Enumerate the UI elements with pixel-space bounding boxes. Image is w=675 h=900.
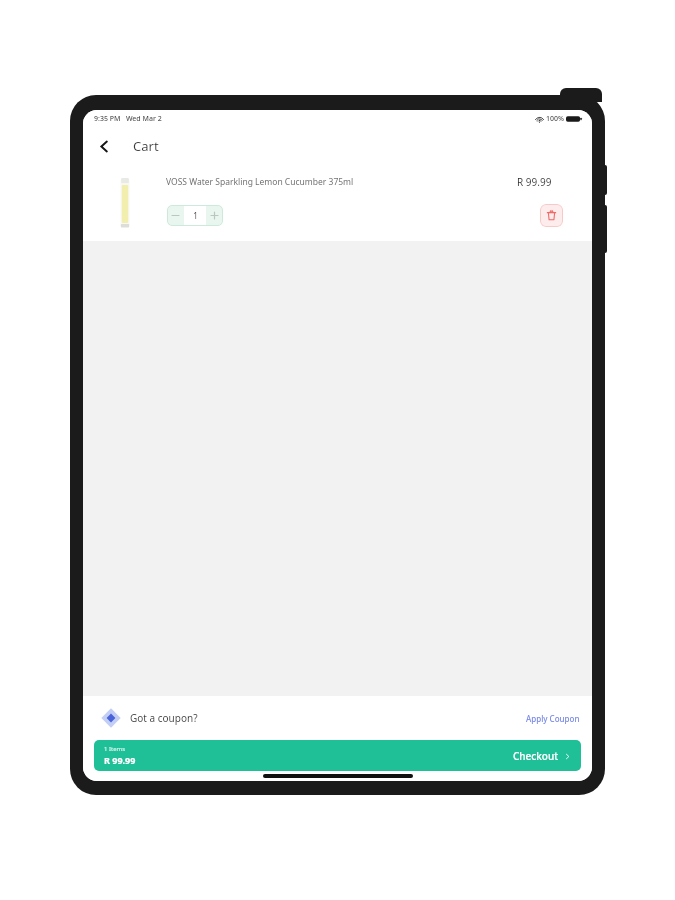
staticText: R 99.99 (104, 754, 136, 766)
staticText: Cart (133, 137, 159, 155)
button[interactable]: Apply Coupon (522, 709, 584, 728)
button[interactable]: Increase quantity (206, 205, 223, 226)
staticText: Checkout (513, 749, 559, 763)
button[interactable]: Delete item (540, 204, 563, 227)
button[interactable]: Back (89, 131, 119, 161)
staticText: 1 Items (104, 745, 126, 753)
button[interactable]: Decrease quantity (167, 205, 184, 226)
staticText: 9:35 PM Wed Mar 2 (94, 114, 162, 124)
button[interactable]: 1 Items (94, 740, 581, 771)
button[interactable]: Got a coupon? (83, 696, 592, 740)
staticText: 100% (546, 114, 564, 124)
staticText: Got a coupon? (130, 711, 198, 725)
staticText: R 99.99 (517, 175, 552, 189)
staticText: 1 (193, 210, 198, 221)
staticText: VOSS Water Sparkling Lemon Cucumber 375m… (166, 176, 354, 188)
staticText: Apply Coupon (526, 713, 580, 724)
